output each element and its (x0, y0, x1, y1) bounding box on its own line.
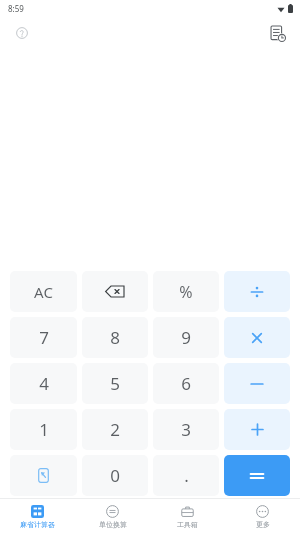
staticText: AC (34, 282, 53, 302)
button[interactable]: History (262, 18, 292, 48)
button[interactable]: 3 (153, 409, 219, 450)
staticText: 7 (39, 326, 49, 349)
button[interactable]: . (153, 455, 219, 496)
staticText: 3 (181, 418, 191, 441)
button[interactable]: Help (8, 19, 36, 47)
button[interactable]: Collapse keypad (10, 455, 77, 496)
button[interactable]: 工具箱 (150, 499, 225, 534)
staticText: 2 (110, 418, 120, 441)
button[interactable]: Divide (224, 271, 290, 312)
staticText: 8:59 (8, 3, 24, 14)
button[interactable]: 5 (82, 363, 148, 404)
button[interactable]: 更多 (225, 499, 300, 534)
staticText: 1 (39, 418, 49, 441)
button[interactable]: Backspace (82, 271, 148, 312)
button[interactable]: 2 (82, 409, 148, 450)
button[interactable]: 8 (82, 317, 148, 358)
button[interactable]: 1 (10, 409, 77, 450)
staticText: . (184, 464, 189, 487)
staticText: 0 (110, 464, 120, 487)
button[interactable]: 0 (82, 455, 148, 496)
staticText: 4 (39, 372, 49, 395)
button[interactable]: Minus (224, 363, 290, 404)
button[interactable]: 7 (10, 317, 77, 358)
button[interactable]: 9 (153, 317, 219, 358)
staticText: 工具箱 (177, 520, 198, 529)
button[interactable]: 6 (153, 363, 219, 404)
staticText: % (179, 281, 193, 303)
staticText: 单位换算 (99, 520, 127, 529)
staticText: 5 (110, 372, 120, 395)
staticText: 8 (110, 326, 120, 349)
button[interactable]: 单位换算 (75, 499, 150, 534)
button[interactable]: 麻省计算器 (0, 499, 75, 534)
staticText: 麻省计算器 (20, 520, 55, 529)
button[interactable]: Multiply (224, 317, 290, 358)
button[interactable]: Equals (224, 455, 290, 496)
button[interactable]: % (153, 271, 219, 312)
button[interactable]: AC (10, 271, 77, 312)
staticText: 9 (181, 326, 191, 349)
button[interactable]: 4 (10, 363, 77, 404)
staticText: 6 (181, 372, 191, 395)
button[interactable]: Plus (224, 409, 290, 450)
staticText: 更多 (256, 520, 270, 529)
